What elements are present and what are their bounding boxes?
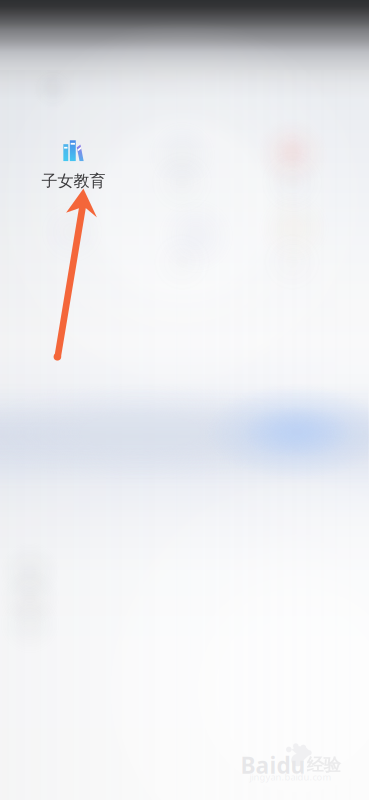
staticText: 经验 — [306, 754, 340, 776]
staticText: Baidu — [240, 750, 305, 780]
button[interactable]: 子女教育 — [21, 136, 125, 194]
staticText: 子女教育 — [41, 171, 105, 191]
staticText: jingyan.baidu.com — [249, 771, 331, 783]
